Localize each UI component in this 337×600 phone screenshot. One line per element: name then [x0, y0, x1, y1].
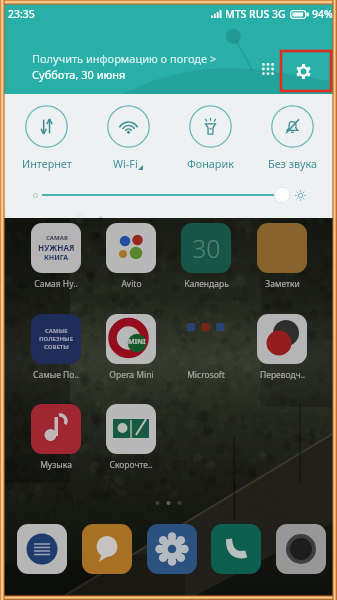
button[interactable]: САМЫЕ	[25, 314, 87, 381]
staticText: MINI	[128, 337, 146, 347]
staticText: СОВЕТЫ	[44, 343, 69, 351]
staticText: Avito	[121, 278, 142, 290]
staticText: Microsoft	[187, 369, 225, 381]
button[interactable]: MINI	[100, 314, 162, 381]
button[interactable]: 30	[175, 223, 237, 290]
button[interactable]: Microsoft	[175, 314, 237, 381]
staticText: Самые По..	[33, 369, 79, 381]
staticText: Получить информацию о погоде >	[32, 51, 217, 66]
button[interactable]: Chat	[82, 524, 132, 574]
button[interactable]: Заметки	[251, 223, 313, 290]
staticText: Календарь	[184, 278, 229, 290]
staticText: НУЖНАЯ	[38, 242, 75, 253]
button[interactable]: Музыка	[25, 404, 87, 471]
button[interactable]: Фонарик	[169, 105, 251, 171]
staticText: 30	[192, 231, 221, 265]
button[interactable]: All apps	[252, 53, 283, 84]
button[interactable]: САМАЯ	[25, 223, 87, 290]
staticText: 94%	[312, 7, 333, 21]
staticText: САМАЯ	[46, 234, 68, 242]
staticText: Фонарик	[187, 156, 234, 171]
button[interactable]: Получить информацию о погоде >	[32, 51, 217, 82]
button[interactable]: Переводч..	[251, 314, 313, 381]
staticText: Без звука	[268, 156, 317, 171]
staticText: Самая Ну..	[34, 278, 78, 290]
button[interactable]: Интернет	[6, 105, 87, 171]
staticText: Заметки	[265, 278, 300, 290]
staticText: Музыка	[40, 459, 72, 471]
staticText: САМЫЕ	[45, 327, 68, 335]
staticText: Суббота, 30 июня	[32, 67, 126, 82]
staticText: Wi-Fi	[113, 156, 138, 171]
button[interactable]: Phone	[211, 524, 261, 574]
button[interactable]: Без звука	[251, 105, 333, 171]
button[interactable]: Avito	[100, 223, 162, 290]
staticText: Переводч..	[260, 369, 305, 381]
button[interactable]: Скорочте..	[100, 404, 162, 471]
button[interactable]: Messages	[17, 524, 67, 574]
staticText: Скорочте..	[109, 459, 153, 471]
button[interactable]: Settings	[281, 51, 331, 91]
button[interactable]: Wi-Fi	[87, 105, 169, 171]
staticText: ПОЛЕЗНЫЕ	[39, 335, 74, 343]
staticText: Opera Mini	[109, 369, 154, 381]
staticText: КНИГА	[44, 253, 69, 263]
button[interactable]: Brightness	[42, 185, 290, 205]
staticText: Интернет	[22, 156, 72, 171]
staticText: 23:35	[8, 7, 35, 21]
button[interactable]: Settings	[147, 524, 197, 574]
button[interactable]: Camera	[276, 524, 326, 574]
staticText: MTS RUS 3G	[225, 7, 286, 21]
